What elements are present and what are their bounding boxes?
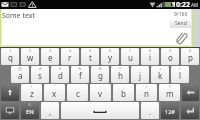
staticText: k — [158, 70, 163, 81]
staticText: i — [149, 52, 152, 63]
button[interactable]: ; — [113, 84, 134, 101]
staticText: # — [39, 66, 42, 71]
button[interactable]: 6 — [101, 48, 119, 65]
staticText: x — [52, 88, 57, 99]
staticText: m — [166, 88, 174, 99]
staticText: l — [179, 70, 182, 81]
button[interactable]: ? — [159, 84, 180, 101]
staticText: , — [49, 106, 52, 117]
button[interactable]: Backspace — [182, 84, 199, 101]
button[interactable]: 4 — [61, 48, 79, 65]
button[interactable]: / — [136, 84, 157, 101]
button[interactable]: 7 — [121, 48, 139, 65]
staticText: " — [54, 84, 56, 89]
button[interactable]: 8 — [141, 48, 159, 65]
button[interactable]: . — [141, 102, 159, 119]
staticText: 4 — [69, 48, 72, 53]
staticText: @ — [18, 66, 22, 71]
staticText: 6 — [109, 48, 112, 53]
staticText: z — [30, 88, 34, 99]
staticText: 2 — [29, 48, 32, 53]
staticText: AM — [191, 2, 199, 8]
staticText: g — [98, 70, 103, 81]
staticText: : — [100, 84, 102, 89]
button[interactable]: 9 — [161, 48, 179, 65]
button[interactable]: * — [111, 66, 129, 83]
button[interactable]: 5 — [81, 48, 99, 65]
button[interactable]: ' — [67, 84, 88, 101]
staticText: s — [38, 70, 42, 81]
staticText: EN — [26, 108, 34, 116]
staticText: b — [121, 88, 126, 99]
staticText: * — [119, 66, 122, 71]
staticText: $ — [59, 66, 62, 71]
staticText: - — [139, 66, 141, 71]
button[interactable]: 3 — [41, 48, 59, 65]
staticText: . — [149, 106, 152, 117]
button[interactable]: ( — [171, 66, 189, 83]
staticText: Send — [175, 20, 187, 27]
staticText: p — [188, 52, 193, 63]
staticText: e — [48, 52, 53, 63]
staticText: 8 — [149, 48, 152, 53]
staticText: ' — [77, 84, 78, 89]
staticText: / — [146, 84, 148, 89]
button[interactable]: + — [151, 66, 169, 83]
staticText: 7 — [129, 48, 132, 53]
staticText: ? — [169, 84, 171, 89]
staticText: c — [76, 88, 80, 99]
button[interactable]: % — [71, 66, 89, 83]
staticText: t — [89, 52, 92, 63]
staticText: q — [8, 52, 13, 63]
staticText: 3 — [49, 48, 52, 53]
staticText: 0 — [189, 48, 192, 53]
staticText: ⚙ — [28, 102, 32, 107]
staticText: ! — [31, 84, 33, 89]
button[interactable]: # — [31, 66, 49, 83]
staticText: 9/160 — [174, 11, 188, 18]
staticText: 9 — [169, 48, 172, 53]
button[interactable]: ! — [21, 84, 42, 101]
staticText: d — [58, 70, 63, 81]
button[interactable]: 1 — [1, 48, 19, 65]
staticText: u — [128, 52, 133, 63]
staticText: f — [79, 70, 82, 81]
staticText: v — [98, 88, 103, 99]
button[interactable]: " — [44, 84, 65, 101]
button[interactable]: Space — [61, 102, 139, 119]
button[interactable]: 0 — [181, 48, 199, 65]
button[interactable]: & — [91, 66, 109, 83]
button[interactable]: Attach — [173, 30, 190, 47]
button[interactable]: , — [41, 102, 59, 119]
staticText: w — [27, 52, 34, 63]
staticText: ( — [179, 66, 181, 71]
button[interactable]: Keyboard settings — [1, 102, 19, 119]
staticText: Some text — [2, 11, 35, 21]
button[interactable]: ⚙ — [21, 102, 39, 119]
staticText: n — [144, 88, 149, 99]
button[interactable]: Enter — [181, 102, 199, 119]
staticText: ; — [123, 84, 125, 89]
staticText: 5 — [89, 48, 92, 53]
staticText: h — [118, 70, 123, 81]
staticText: % — [78, 66, 82, 71]
staticText: o — [168, 52, 173, 63]
staticText: 12# — [165, 108, 175, 115]
button[interactable]: Send — [170, 19, 192, 28]
button[interactable]: 12# — [161, 102, 179, 119]
staticText: y — [108, 52, 113, 63]
button[interactable]: - — [131, 66, 149, 83]
button[interactable]: Shift — [1, 84, 19, 101]
staticText: + — [159, 66, 162, 71]
button[interactable]: $ — [51, 66, 69, 83]
staticText: a — [18, 70, 23, 81]
button[interactable]: @ — [11, 66, 29, 83]
staticText: 10:22 — [172, 0, 190, 9]
staticText: j — [139, 70, 142, 81]
staticText: 1 — [9, 48, 12, 53]
button[interactable]: : — [90, 84, 111, 101]
staticText: & — [99, 66, 102, 71]
button[interactable]: 2 — [21, 48, 39, 65]
staticText: r — [68, 52, 72, 63]
button[interactable]: Some text — [0, 9, 193, 47]
